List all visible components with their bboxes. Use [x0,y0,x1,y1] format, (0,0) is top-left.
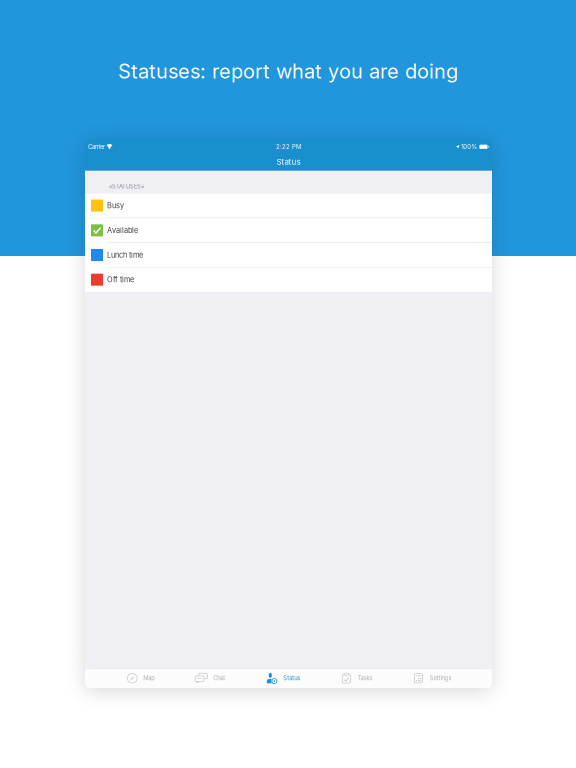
button[interactable]: Lunch time [85,243,492,267]
staticText: Chat [213,675,225,682]
button[interactable]: Available [85,218,492,242]
button[interactable]: Map [109,668,173,688]
staticText: 100% [461,143,477,150]
staticText: Status [276,157,300,167]
staticText: Status [283,675,300,682]
button[interactable]: Status [251,668,315,688]
staticText: Map [143,675,155,682]
staticText: «STATUSES» [109,183,144,190]
staticText: 2:22 PM [276,143,301,150]
staticText: Available [107,226,138,235]
staticText: Settings [429,675,451,682]
staticText: Statuses: report what you are doing [118,59,458,83]
button[interactable]: Off time [85,268,492,292]
button[interactable]: Settings [400,668,464,688]
staticText: Lunch time [107,251,143,259]
staticText: Carrier [88,143,105,150]
button[interactable]: Tasks [325,668,389,688]
staticText: Busy [107,201,124,210]
button[interactable]: Busy [85,193,492,218]
staticText: Off time [107,275,134,284]
button[interactable]: Chat [178,668,242,688]
staticText: Tasks [357,675,372,682]
